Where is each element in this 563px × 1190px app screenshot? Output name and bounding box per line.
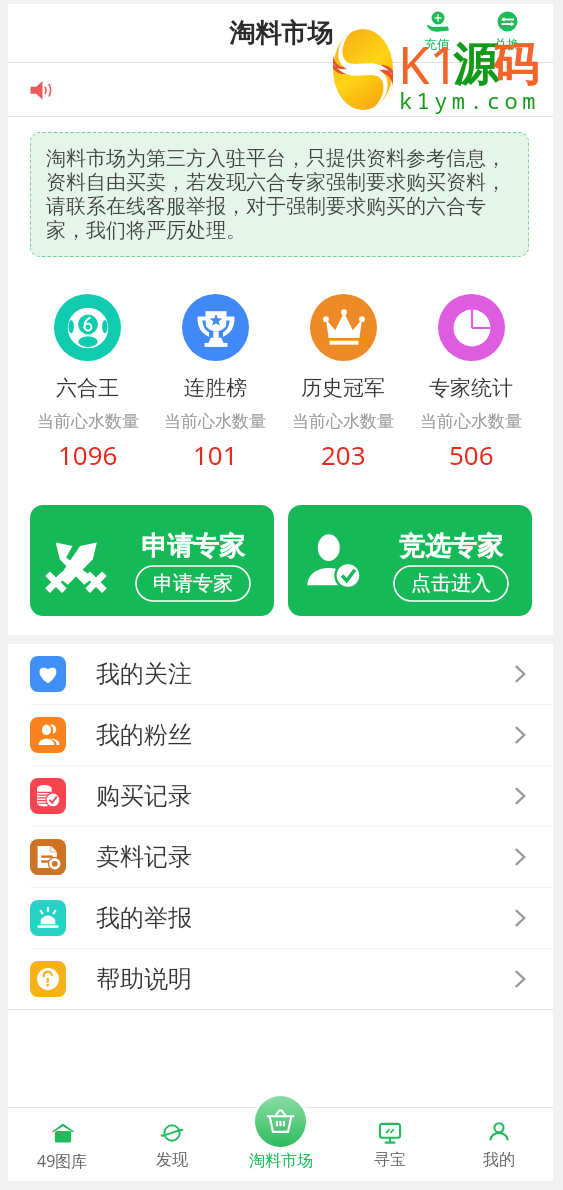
button[interactable]: 寻宝: [335, 1093, 444, 1181]
staticText: 我的粉丝: [96, 720, 192, 750]
staticText: 申请专家: [153, 571, 233, 596]
staticText: 点击进入: [411, 571, 491, 596]
button[interactable]: 公告: [8, 63, 553, 116]
staticText: 申请专家: [141, 530, 245, 563]
button[interactable]: 连胜榜: [151, 294, 279, 472]
staticText: 专家统计: [429, 375, 513, 401]
button[interactable]: 淘料市场: [226, 1093, 335, 1181]
staticText: 1096: [58, 437, 118, 472]
button[interactable]: 卖料记录: [8, 827, 553, 887]
button[interactable]: 49图库: [8, 1093, 117, 1181]
staticText: 506: [449, 437, 494, 472]
staticText: 竞选专家: [399, 530, 503, 563]
staticText: 我的关注: [96, 659, 192, 689]
staticText: 卖料记录: [96, 842, 192, 872]
button[interactable]: 购买记录: [8, 766, 553, 826]
staticText: 101: [193, 437, 238, 472]
staticText: 码: [493, 37, 538, 94]
staticText: 当前心水数量: [37, 411, 139, 432]
staticText: 购买记录: [96, 781, 192, 811]
button[interactable]: 充值: [423, 9, 451, 52]
staticText: K1: [398, 29, 459, 98]
button[interactable]: 竞选专家: [288, 505, 532, 616]
staticText: 淘料市场: [229, 17, 333, 50]
button[interactable]: 专家统计: [407, 294, 535, 472]
staticText: 历史冠军: [301, 375, 385, 401]
button[interactable]: 我的关注: [8, 644, 553, 704]
button[interactable]: 兑换: [493, 9, 521, 52]
staticText: 发现: [156, 1150, 188, 1170]
staticText: 连胜榜: [184, 375, 247, 401]
staticText: k1ym.com: [399, 85, 540, 115]
staticText: 203: [321, 437, 366, 472]
staticText: 淘料市场: [249, 1151, 313, 1171]
staticText: 当前心水数量: [292, 411, 394, 432]
button[interactable]: 帮助说明: [8, 949, 553, 1009]
staticText: 帮助说明: [96, 964, 192, 994]
button[interactable]: 我的粉丝: [8, 705, 553, 765]
staticText: 寻宝: [374, 1150, 406, 1170]
staticText: 当前心水数量: [164, 411, 266, 432]
staticText: 我的: [483, 1150, 515, 1170]
button[interactable]: 申请专家: [30, 505, 274, 616]
staticText: 我的举报: [96, 903, 192, 933]
button[interactable]: 历史冠军: [279, 294, 407, 472]
staticText: 充值: [424, 36, 450, 52]
button[interactable]: 我的: [444, 1093, 553, 1181]
button[interactable]: 我的举报: [8, 888, 553, 948]
button[interactable]: 发现: [117, 1093, 226, 1181]
staticText: 当前心水数量: [420, 411, 522, 432]
staticText: 淘料市场为第三方入驻平台，只提供资料参考信息，资料自由买卖，若发现六合专家强制要…: [46, 146, 524, 243]
button[interactable]: 六合王: [24, 294, 151, 472]
staticText: 六合王: [56, 375, 119, 401]
staticText: 兑换: [494, 36, 520, 52]
staticText: 源: [453, 37, 498, 94]
staticText: 49图库: [37, 1150, 88, 1172]
